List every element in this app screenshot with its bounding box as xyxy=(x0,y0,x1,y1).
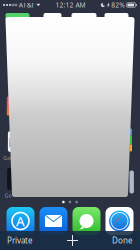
button[interactable]: New tab xyxy=(61,231,84,250)
button[interactable]: Mail xyxy=(39,207,67,235)
staticText: Done xyxy=(112,235,133,246)
button[interactable]: Messages xyxy=(72,207,100,235)
button[interactable]: Done xyxy=(108,231,137,250)
staticText: 12:12 AM xyxy=(56,1,86,9)
staticText: 82% xyxy=(111,1,125,9)
staticText: A xyxy=(16,212,25,230)
button[interactable]: App Store xyxy=(6,207,34,235)
staticText: Goo xyxy=(3,154,13,162)
staticText: Private xyxy=(7,235,33,246)
staticText: AT&T xyxy=(19,1,35,9)
button[interactable]: Safari xyxy=(105,207,133,235)
button[interactable]: Private xyxy=(3,231,37,250)
staticText: Go xyxy=(4,192,11,199)
